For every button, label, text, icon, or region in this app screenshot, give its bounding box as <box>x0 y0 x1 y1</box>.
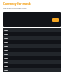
staticText: the latest exchange rates <box>3 7 27 10</box>
staticText: USD <box>4 45 9 48</box>
button[interactable]: USD <box>3 64 61 68</box>
button[interactable]: USD <box>3 32 61 36</box>
button[interactable]: USD <box>3 48 61 52</box>
staticText: USD <box>4 33 9 36</box>
staticText: USD <box>4 29 9 32</box>
button[interactable]: USD <box>3 68 61 72</box>
button[interactable]: USD <box>3 40 61 44</box>
staticText: USD <box>4 53 9 56</box>
staticText: Currency for mask <box>3 2 31 6</box>
button[interactable]: USD <box>3 44 61 48</box>
staticText: USD <box>4 61 9 64</box>
staticText: USD <box>4 49 9 52</box>
staticText: USD <box>4 37 9 40</box>
staticText: USD <box>4 69 9 72</box>
button[interactable]: USD <box>3 36 61 40</box>
staticText: USD <box>4 65 9 68</box>
button[interactable]: Convert <box>52 18 59 22</box>
staticText: USD <box>4 57 9 60</box>
button[interactable]: USD <box>3 52 61 56</box>
button[interactable]: USD <box>3 28 61 32</box>
button[interactable]: USD <box>3 60 61 64</box>
staticText: USD <box>4 41 9 44</box>
button[interactable]: USD <box>3 56 61 60</box>
